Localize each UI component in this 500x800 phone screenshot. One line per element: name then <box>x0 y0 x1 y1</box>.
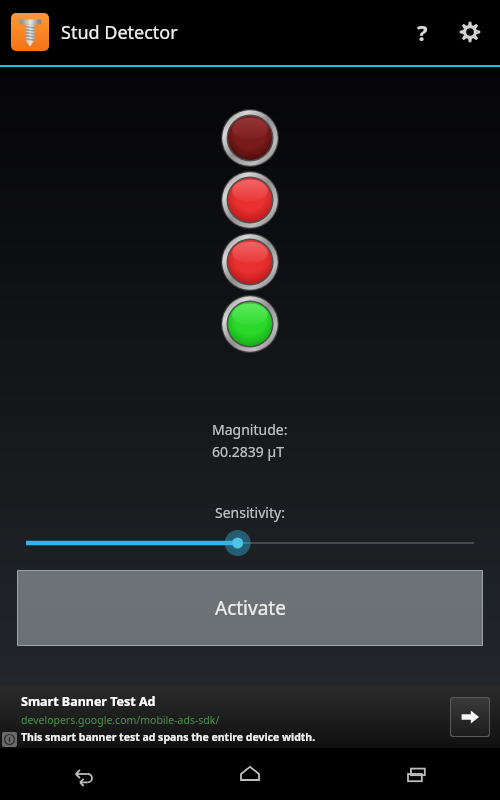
staticText: ? <box>417 17 428 47</box>
button[interactable]: Indicator light <box>220 170 280 230</box>
button[interactable]: Settings <box>446 8 494 56</box>
button[interactable]: Home <box>166 748 333 800</box>
staticText: Smart Banner Test Ad <box>21 693 156 710</box>
staticText: Sensitivity: <box>215 503 285 522</box>
staticText: developers.google.com/mobile-ads-sdk/ <box>21 713 220 727</box>
staticText: Magnitude: <box>212 420 288 439</box>
button[interactable]: Indicator light <box>220 108 280 168</box>
button[interactable]: Indicator light <box>220 232 280 292</box>
staticText: This smart banner test ad spans the enti… <box>21 730 316 744</box>
staticText: Stud Detector <box>61 20 178 45</box>
button[interactable]: Smart Banner Test Ad <box>0 686 500 748</box>
button[interactable]: Recents <box>333 748 500 800</box>
button[interactable]: Activate <box>18 571 482 645</box>
button[interactable]: Stud Detector app icon <box>11 13 49 51</box>
button[interactable]: Indicator light <box>220 294 280 354</box>
button[interactable]: Sensitivity slider <box>26 530 474 556</box>
staticText: 60.2839 µT <box>212 442 284 461</box>
button[interactable]: Ad info <box>2 732 17 747</box>
button[interactable]: Back <box>0 748 166 800</box>
button[interactable]: Help <box>398 8 446 56</box>
staticText: Activate <box>215 595 286 621</box>
button[interactable]: Open ad <box>451 698 489 736</box>
